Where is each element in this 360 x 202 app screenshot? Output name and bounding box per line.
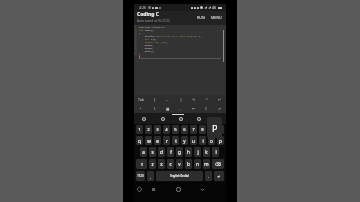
button[interactable]: e (154, 136, 161, 145)
button[interactable]: Tool 3 (172, 113, 190, 124)
button[interactable]: ° (200, 95, 213, 104)
button[interactable]: g (176, 147, 183, 157)
button[interactable]: a (140, 147, 147, 157)
button[interactable]: ↗ (213, 104, 226, 113)
button[interactable]: Recents (150, 186, 157, 193)
button[interactable]: u (190, 136, 197, 145)
button[interactable]: o (208, 136, 215, 145)
button[interactable]: , (147, 171, 154, 181)
staticText: c (169, 161, 172, 167)
staticText: y (183, 138, 186, 144)
staticText: scanf( (139, 40, 154, 43)
staticText: ↵ (218, 98, 222, 102)
button[interactable]: i (199, 136, 206, 145)
button[interactable]: 7 (190, 125, 197, 134)
staticText: m (204, 161, 209, 167)
staticText: 4 (135, 34, 137, 37)
staticText: l (215, 149, 217, 155)
button[interactable]: 1 (136, 125, 143, 134)
button[interactable]: r (163, 136, 170, 145)
button[interactable]: q (136, 136, 143, 145)
button[interactable]: p (217, 136, 224, 145)
staticText: RUN (197, 15, 205, 20)
staticText: 8 (201, 127, 204, 133)
staticText: ↵ (217, 174, 221, 178)
button[interactable]: Tool 4 (190, 113, 208, 124)
button[interactable]: 8 (199, 125, 206, 134)
button[interactable]: ⌫ (212, 159, 224, 169)
button[interactable]: ¢ (200, 104, 213, 113)
staticText: , (150, 174, 151, 179)
button[interactable]: RUN (195, 12, 207, 23)
button[interactable]: l (212, 147, 219, 157)
button[interactable]: h (185, 147, 192, 157)
button[interactable]: Tool 5 (208, 113, 226, 124)
button[interactable]: w (145, 136, 152, 145)
staticText: 2 (135, 28, 137, 31)
staticText: English (India) (170, 174, 189, 178)
staticText: ?123 (137, 174, 144, 178)
button[interactable]: b (185, 159, 192, 169)
button[interactable]: z (149, 159, 156, 169)
button[interactable]: n (194, 159, 201, 169)
button[interactable]: ?123 (136, 171, 145, 181)
button[interactable]: Voice input (136, 186, 143, 193)
staticText: • (140, 106, 142, 111)
staticText: \ (154, 106, 156, 111)
staticText: a,b; (151, 37, 157, 40)
button[interactable]: d (158, 147, 165, 157)
button[interactable]: -- (161, 95, 174, 104)
staticText: ↩ (192, 107, 196, 111)
staticText: 4:26 (139, 5, 147, 10)
button[interactable]: m (203, 159, 210, 169)
button[interactable]: 6 (181, 125, 188, 134)
button[interactable]: s (149, 147, 156, 157)
staticText: ↗ (218, 107, 222, 111)
staticText: w (147, 138, 151, 144)
button[interactable]: ■ (161, 104, 174, 113)
staticText: . (208, 174, 209, 179)
button[interactable]: f (167, 147, 174, 157)
button[interactable]: Home (175, 186, 182, 193)
button[interactable]: 5 (172, 125, 179, 134)
button[interactable]: 9 (208, 125, 215, 134)
button[interactable]: x (158, 159, 165, 169)
button[interactable]: { (148, 95, 161, 104)
button[interactable]: ↰ (187, 95, 200, 104)
button[interactable]: \ (148, 104, 161, 113)
staticText: &a (162, 40, 165, 43)
button[interactable]: c (167, 159, 174, 169)
button[interactable]: ↵ (213, 95, 226, 104)
button[interactable]: t (172, 136, 179, 145)
button[interactable]: Hide keyboard (199, 186, 206, 193)
button[interactable]: Tab (134, 95, 148, 104)
staticText: ¢ (205, 106, 208, 111)
button[interactable]: . (205, 171, 212, 181)
button[interactable]: • (134, 104, 148, 113)
button[interactable]: MENU (209, 12, 224, 23)
staticText: f (170, 149, 172, 155)
staticText: "Hello this is a test program" (155, 34, 199, 37)
button[interactable]: k (203, 147, 210, 157)
button[interactable]: | (174, 95, 187, 104)
staticText: 5 (135, 37, 137, 40)
button[interactable]: v (176, 159, 183, 169)
button[interactable]: 3 (154, 125, 161, 134)
button[interactable]: j (194, 147, 201, 157)
button[interactable]: ⇧ (136, 159, 147, 169)
button[interactable]: Tool 1 (134, 113, 153, 124)
staticText: o (210, 138, 213, 144)
button[interactable]: - (174, 104, 187, 113)
button[interactable]: 4 (163, 125, 170, 134)
button[interactable]: English (India) (156, 171, 203, 181)
button[interactable]: ↩ (187, 104, 200, 113)
staticText: ⌫ (215, 162, 221, 167)
button[interactable]: 2 (145, 125, 152, 134)
staticText: 10 (134, 52, 137, 55)
button[interactable]: Tool 2 (153, 113, 172, 124)
staticText: MENU (211, 15, 222, 20)
button[interactable]: ↵ (214, 171, 224, 181)
button[interactable]: y (181, 136, 188, 145)
